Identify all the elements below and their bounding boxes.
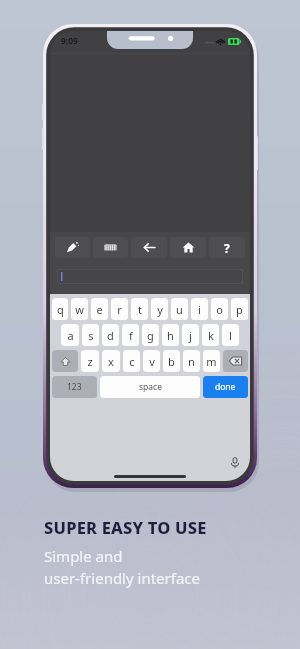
button[interactable]: q: [52, 298, 68, 320]
button[interactable]: 123: [52, 376, 97, 398]
staticText: v: [149, 354, 155, 369]
button[interactable]: s: [82, 324, 99, 346]
staticText: k: [208, 328, 214, 343]
staticText: n: [188, 354, 195, 369]
button[interactable]: Dictate: [228, 456, 242, 470]
staticText: 123: [67, 381, 82, 393]
staticText: u: [176, 302, 183, 317]
staticText: w: [75, 302, 84, 317]
button[interactable]: Delete: [223, 350, 248, 372]
staticText: l: [229, 328, 232, 343]
button[interactable]: p: [231, 298, 248, 320]
staticText: h: [167, 328, 174, 343]
button[interactable]: b: [163, 350, 180, 372]
button[interactable]: d: [102, 324, 119, 346]
button[interactable]: e: [91, 298, 108, 320]
button[interactable]: t: [131, 298, 148, 320]
button[interactable]: o: [211, 298, 228, 320]
button[interactable]: Help: [209, 237, 245, 258]
button[interactable]: v: [143, 350, 160, 372]
button[interactable]: g: [142, 324, 159, 346]
staticText: t: [138, 302, 142, 317]
staticText: x: [108, 354, 114, 369]
button[interactable]: n: [183, 350, 200, 372]
staticText: space: [139, 381, 162, 393]
staticText: ?: [224, 240, 230, 256]
staticText: done: [215, 381, 236, 393]
staticText: o: [216, 302, 223, 317]
staticText: r: [117, 302, 122, 317]
button[interactable]: l: [222, 324, 239, 346]
staticText: p: [236, 302, 243, 317]
button[interactable]: Shift: [52, 350, 78, 372]
staticText: e: [96, 302, 103, 317]
button[interactable]: k: [202, 324, 219, 346]
button[interactable]: Keyboard: [93, 237, 128, 258]
staticText: f: [129, 328, 133, 343]
staticText: c: [129, 354, 135, 369]
staticText: Simple and: [44, 546, 123, 566]
button[interactable]: r: [111, 298, 128, 320]
staticText: y: [157, 302, 163, 317]
staticText: d: [107, 328, 114, 343]
staticText: SUPER EASY TO USE: [44, 516, 207, 538]
button[interactable]: space: [100, 376, 200, 398]
button[interactable]: y: [151, 298, 168, 320]
staticText: b: [168, 354, 175, 369]
button[interactable]: c: [123, 350, 140, 372]
staticText: j: [189, 328, 192, 343]
staticText: m: [206, 354, 217, 369]
staticText: user-friendly interface: [44, 568, 200, 588]
button[interactable]: done: [203, 376, 248, 398]
staticText: 9:09: [61, 35, 78, 47]
staticText: g: [147, 328, 154, 343]
button[interactable]: j: [182, 324, 199, 346]
staticText: i: [198, 302, 201, 317]
button[interactable]: w: [71, 298, 88, 320]
button[interactable]: Home: [170, 237, 206, 258]
button[interactable]: h: [162, 324, 179, 346]
button[interactable]: a: [61, 324, 79, 346]
staticText: s: [88, 328, 94, 343]
button[interactable]: u: [171, 298, 188, 320]
button[interactable]: z: [81, 350, 99, 372]
staticText: z: [87, 354, 93, 369]
button[interactable]: Draw: [55, 237, 90, 258]
button[interactable]: m: [203, 350, 220, 372]
button[interactable]: Back: [131, 237, 167, 258]
staticText: a: [67, 328, 74, 343]
button[interactable]: [57, 269, 243, 284]
button[interactable]: x: [102, 350, 120, 372]
staticText: q: [57, 302, 64, 317]
button[interactable]: i: [191, 298, 208, 320]
button[interactable]: f: [122, 324, 139, 346]
